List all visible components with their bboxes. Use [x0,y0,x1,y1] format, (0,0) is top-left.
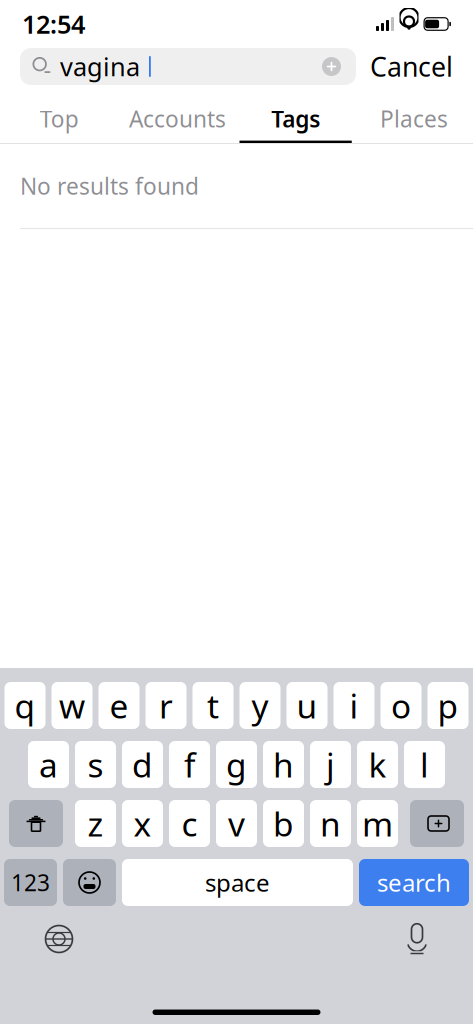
staticText: l [420,742,429,787]
button[interactable]: search [359,859,469,906]
button[interactable]: r [145,682,186,729]
staticText: u [296,683,317,728]
staticText: m [362,801,393,846]
button[interactable]: j [310,741,351,788]
staticText: r [159,683,173,728]
button[interactable]: Delete [410,800,464,847]
button[interactable]: u [286,682,327,729]
staticText: j [326,742,335,787]
button[interactable]: Places [355,97,473,143]
button[interactable]: a [28,741,69,788]
staticText: e [109,683,128,728]
button[interactable]: b [263,800,304,847]
button[interactable]: Dictation [399,918,435,960]
button[interactable]: m [357,800,398,847]
button[interactable]: q [4,682,45,729]
button[interactable]: Accounts [118,97,236,143]
staticText: f [184,742,195,787]
staticText: Places [380,104,448,134]
button[interactable]: v [216,800,257,847]
button[interactable]: n [310,800,351,847]
staticText: search [377,867,451,898]
staticText: a [39,742,58,787]
staticText: Tags [271,104,320,134]
button[interactable]: l [404,741,445,788]
button[interactable]: Cancel [370,49,453,84]
staticText: x [133,801,151,846]
button[interactable]: f [169,741,210,788]
staticText: k [368,742,386,787]
staticText: 12:54 [22,7,85,41]
button[interactable]: Top [0,97,118,143]
staticText: v [228,801,245,846]
staticText: Accounts [129,104,226,134]
button[interactable]: Emoji [63,859,116,906]
staticText: 123 [11,867,50,897]
button[interactable]: y [239,682,280,729]
button[interactable]: space [122,859,353,906]
button[interactable]: w [51,682,92,729]
staticText: b [273,801,294,846]
button[interactable]: z [75,800,116,847]
staticText: s [87,742,103,787]
staticText: i [349,683,358,728]
button[interactable]: s [75,741,116,788]
button[interactable]: t [192,682,233,729]
button[interactable]: Clear text [320,55,343,78]
staticText: Top [40,104,79,134]
staticText: p [437,683,458,728]
staticText: Cancel [370,49,453,84]
button[interactable]: h [263,741,304,788]
staticText: No results found [20,171,199,201]
staticText: vagina [60,50,140,83]
staticText: n [320,801,341,846]
staticText: w [59,683,85,728]
button[interactable]: Next keyboard [38,918,80,960]
button[interactable]: c [169,800,210,847]
staticText: t [207,683,219,728]
staticText: g [226,742,247,787]
staticText: c [181,801,197,846]
button[interactable]: x [122,800,163,847]
staticText: y [251,683,268,728]
button[interactable]: 123 [4,859,57,906]
button[interactable]: d [122,741,163,788]
button[interactable]: o [380,682,421,729]
staticText: q [14,683,35,728]
staticText: space [205,867,270,898]
staticText: h [273,742,294,787]
staticText: z [87,801,103,846]
button[interactable]: k [357,741,398,788]
staticText: o [391,683,411,728]
button[interactable]: i [333,682,374,729]
button[interactable]: Shift [9,800,63,847]
button[interactable]: p [427,682,468,729]
button[interactable]: g [216,741,257,788]
button[interactable]: e [98,682,139,729]
button[interactable]: Tags [236,97,355,143]
staticText: d [132,742,153,787]
